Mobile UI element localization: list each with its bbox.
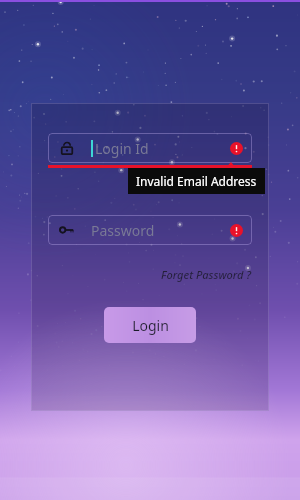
staticText: Forget Password ? [161, 267, 252, 282]
staticText: Login [132, 316, 169, 335]
other: Error [230, 224, 243, 237]
staticText: Password [91, 221, 155, 240]
staticText: Login Id [95, 139, 149, 158]
button[interactable]: Password [48, 215, 252, 245]
button[interactable]: Login Id [48, 133, 252, 163]
button[interactable]: Login [104, 307, 196, 343]
staticText: Invalid Email Address [136, 173, 257, 189]
other: Error [230, 142, 243, 155]
button[interactable]: Forget Password ? [144, 263, 269, 286]
